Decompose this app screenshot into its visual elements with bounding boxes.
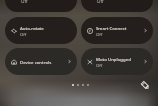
button[interactable]: Smart Connect [81,17,153,44]
staticText: Off [96,62,103,68]
staticText: Off [96,31,103,37]
staticText: Off [97,0,104,4]
button[interactable]: Off [5,0,77,12]
button[interactable]: Auto-rotate [5,17,77,44]
staticText: Device controls [20,59,52,65]
staticText: Smart Connect [96,25,127,31]
staticText: Auto-rotate [20,25,44,31]
button[interactable]: Edit tiles [139,79,151,91]
button[interactable]: Device controls [5,48,77,75]
button[interactable]: Off [81,0,153,12]
staticText: Moto Unplugged [96,56,131,62]
button[interactable]: Moto Unplugged [81,48,153,75]
staticText: Off [20,31,27,37]
staticText: Off [21,0,28,4]
